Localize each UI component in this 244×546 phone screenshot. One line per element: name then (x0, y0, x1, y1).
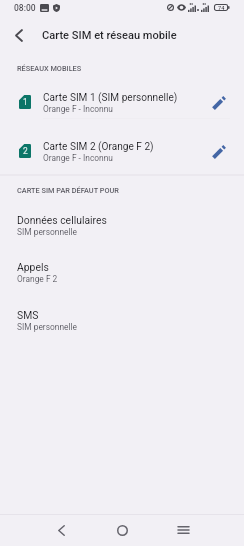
staticText: 2 (23, 146, 28, 156)
staticText: Carte SIM 1 (SIM personnelle) (43, 92, 178, 104)
button[interactable]: 2 (0, 136, 244, 170)
button[interactable]: Back (41, 514, 81, 546)
button[interactable]: Edit SIM (201, 86, 235, 120)
button[interactable]: Edit SIM (201, 135, 235, 169)
button[interactable]: Recent apps (163, 514, 203, 546)
staticText: SMS (17, 309, 39, 321)
button[interactable]: SMS (0, 299, 244, 335)
button[interactable]: Appels (0, 251, 244, 287)
staticText: Orange F - Inconnu (43, 153, 113, 163)
staticText: 74 (218, 5, 225, 11)
button[interactable]: 1 (0, 87, 244, 121)
staticText: RÉSEAUX MOBILES (17, 64, 82, 73)
staticText: 1 (23, 97, 28, 107)
staticText: Carte SIM 2 (Orange F 2) (43, 141, 154, 153)
button[interactable]: Back (0, 16, 38, 54)
staticText: Orange F - Inconnu (43, 104, 113, 114)
staticText: CARTE SIM PAR DÉFAUT POUR (17, 186, 119, 195)
staticText: SIM personnelle (17, 227, 78, 237)
staticText: 08:00 (14, 3, 36, 13)
staticText: Orange F 2 (17, 274, 58, 284)
staticText: SIM personnelle (17, 322, 78, 332)
staticText: Données cellulaires (17, 214, 107, 226)
button[interactable]: Données cellulaires (0, 204, 244, 240)
staticText: Carte SIM et réseau mobile (42, 29, 177, 42)
button[interactable]: Home (102, 514, 142, 546)
staticText: Appels (17, 261, 49, 273)
